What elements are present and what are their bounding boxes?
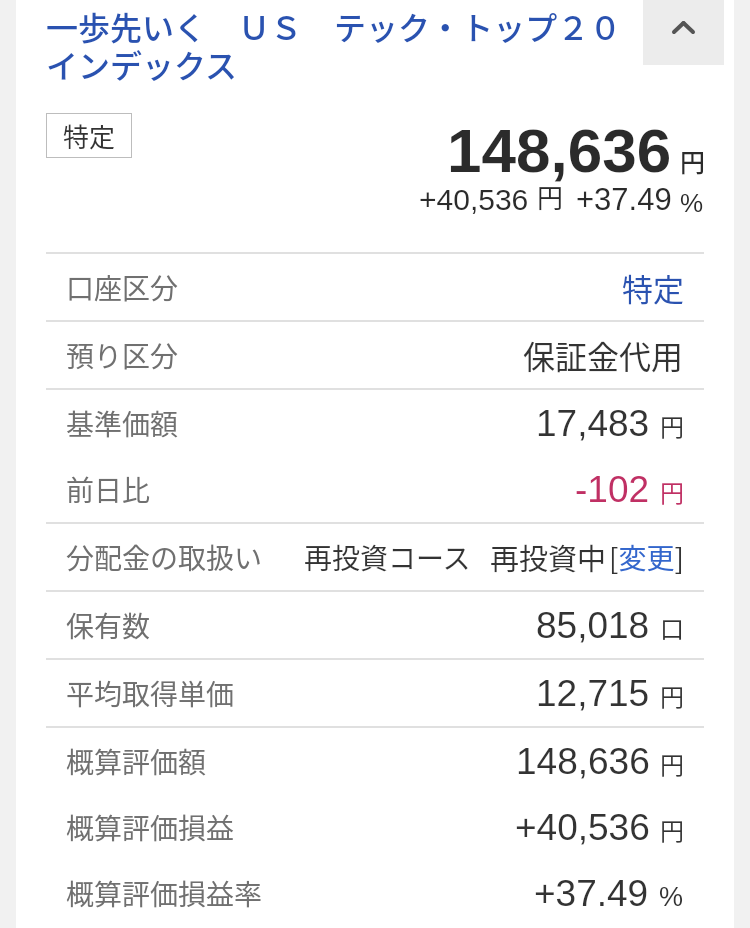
staticText: 預り区分 <box>66 335 179 376</box>
staticText: 概算評価損益率 <box>66 873 263 914</box>
staticText: +40,536 <box>419 183 529 217</box>
staticText: 円 <box>660 746 684 781</box>
staticText: 特定 <box>622 265 684 310</box>
staticText: 円 <box>660 678 684 713</box>
staticText: 円 <box>660 474 684 509</box>
staticText: 前日比 <box>66 469 151 510</box>
button[interactable]: 平均取得単価 <box>16 660 734 726</box>
button[interactable]: 基準価額 <box>16 390 734 456</box>
staticText: 円 <box>660 812 684 847</box>
button[interactable]: 一歩先いく ＵＳ テック・トップ２０インデックス <box>46 10 643 86</box>
staticText: +37.49 <box>576 182 672 217</box>
staticText: 特定 <box>63 117 116 155</box>
staticText: 概算評価損益 <box>66 807 235 848</box>
staticText: 円 <box>680 143 706 179</box>
staticText: 分配金の取扱い <box>66 537 263 578</box>
button[interactable]: Collapse section <box>643 0 724 65</box>
staticText: 再投資コース <box>304 537 471 578</box>
button[interactable]: [変更] <box>609 537 684 578</box>
staticText: 円 <box>660 408 684 443</box>
staticText: % <box>680 188 704 217</box>
button[interactable]: 口座区分 <box>16 254 734 320</box>
button[interactable]: 概算評価額 <box>16 728 734 794</box>
button[interactable]: 分配金の取扱い <box>16 524 734 590</box>
button[interactable]: 前日比 <box>16 456 734 522</box>
staticText: 85,018 <box>536 605 650 646</box>
staticText: 口座区分 <box>66 267 179 308</box>
staticText: 保有数 <box>66 605 151 646</box>
staticText: 円 <box>537 178 564 216</box>
staticText: 平均取得単価 <box>66 673 235 714</box>
button[interactable]: 概算評価損益 <box>16 794 734 860</box>
staticText: 148,636 <box>447 116 672 185</box>
staticText: 17,483 <box>536 403 650 444</box>
staticText: 保証金代用 <box>523 332 684 378</box>
staticText: 口 <box>660 610 684 645</box>
button[interactable]: 預り区分 <box>16 322 734 388</box>
staticText: 148,636 <box>516 741 650 782</box>
button[interactable]: 概算評価損益率 <box>16 860 734 926</box>
staticText: 概算評価額 <box>66 741 207 782</box>
button[interactable]: 保有数 <box>16 592 734 658</box>
staticText: -102 <box>575 469 650 510</box>
button[interactable]: 特定 <box>46 113 132 158</box>
staticText: 再投資中 <box>490 536 607 578</box>
staticText: 基準価額 <box>66 403 179 444</box>
staticText: 12,715 <box>536 673 650 714</box>
staticText: +40,536 <box>515 807 650 848</box>
staticText: +37.49 <box>534 873 649 914</box>
staticText: % <box>659 882 684 912</box>
